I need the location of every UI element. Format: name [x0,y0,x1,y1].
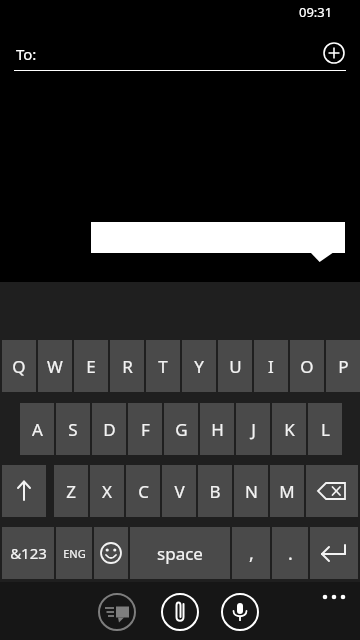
button[interactable]: N [234,465,268,517]
button[interactable]: L [308,403,342,455]
staticText: To: [16,44,37,64]
staticText: 09:31 [299,3,333,21]
staticText: T [158,355,168,378]
button[interactable]: E [74,340,108,392]
staticText: Z [66,480,76,503]
staticText: U [229,355,242,378]
button[interactable]: Shift [2,465,46,517]
button[interactable]: Backspace [306,465,358,517]
staticText: Q [12,355,26,378]
button[interactable]: P [326,340,360,392]
staticText: L [321,418,330,441]
staticText: , [249,541,254,566]
button[interactable]: H [200,403,234,455]
staticText: J [251,418,256,441]
button[interactable]: M [270,465,304,517]
staticText: ENG [63,546,86,561]
staticText: . [288,541,293,566]
button[interactable]: Voice input [221,593,259,631]
button[interactable]: More options [316,586,352,608]
button[interactable]: B [198,465,232,517]
button[interactable]: . [272,527,308,579]
button[interactable]: C [126,465,160,517]
button[interactable]: O [290,340,324,392]
staticText: W [47,355,63,378]
staticText: H [211,418,224,441]
button[interactable]: Emoji [94,527,128,579]
button[interactable]: space [130,527,230,579]
button[interactable]: X [90,465,124,517]
button[interactable]: S [56,403,90,455]
button[interactable]: T [146,340,180,392]
button[interactable]: K [272,403,306,455]
staticText: K [284,418,295,441]
button[interactable]: Z [54,465,88,517]
button[interactable]: Y [182,340,216,392]
staticText: G [175,418,188,441]
staticText: Y [194,355,204,378]
button[interactable]: G [164,403,198,455]
button[interactable]: R [110,340,144,392]
button[interactable]: V [162,465,196,517]
staticText: C [138,480,149,503]
button[interactable]: Enter [310,527,358,579]
button[interactable]: F [128,403,162,455]
button[interactable]: &123 [2,527,54,579]
button[interactable]: I [254,340,288,392]
staticText: F [141,418,150,441]
button[interactable]: , [232,527,270,579]
staticText: R [122,355,133,378]
staticText: P [338,355,349,378]
button[interactable]: U [218,340,252,392]
staticText: N [245,480,258,503]
staticText: I [268,355,274,378]
staticText: S [68,418,78,441]
staticText: A [32,418,43,441]
staticText: V [174,480,185,503]
staticText: M [279,480,295,503]
staticText: B [209,480,221,503]
staticText: X [102,480,112,503]
staticText: O [300,355,314,378]
button[interactable]: J [236,403,270,455]
button[interactable]: Add recipient [320,39,348,67]
staticText: space [157,542,203,565]
button[interactable]: ENG [56,527,92,579]
button[interactable]: Attach [161,593,199,631]
button[interactable]: W [38,340,72,392]
staticText: &123 [10,543,47,563]
button[interactable]: D [92,403,126,455]
button[interactable]: A [20,403,54,455]
staticText: D [103,418,116,441]
staticText: E [86,355,96,378]
button[interactable]: Q [2,340,36,392]
button[interactable]: Message type [98,593,136,631]
